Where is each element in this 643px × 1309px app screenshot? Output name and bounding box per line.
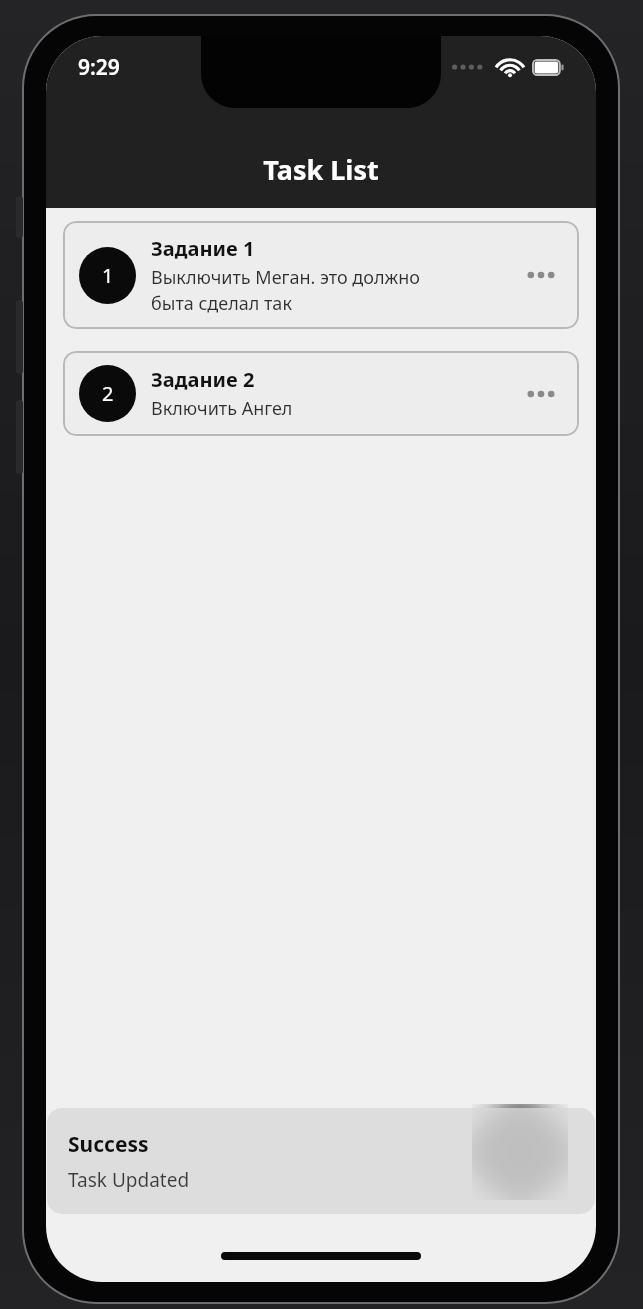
staticText: 1 (102, 262, 114, 289)
staticText: Задание 2 (151, 366, 255, 393)
button[interactable]: Add task (472, 1104, 568, 1200)
staticText: Task Updated (68, 1167, 190, 1193)
staticText: Задание 1 (151, 235, 255, 262)
button[interactable]: 2 (63, 351, 579, 436)
staticText: Выключить Меган. это должно быта сделал … (151, 265, 420, 315)
staticText: 9:29 (78, 53, 120, 82)
staticText: Task List (263, 151, 379, 188)
staticText: Включить Ангел (151, 396, 293, 421)
button[interactable]: Success (47, 1108, 595, 1214)
staticText: Success (68, 1130, 149, 1159)
button[interactable]: More options (519, 253, 563, 297)
button[interactable]: More options (519, 372, 563, 416)
button[interactable]: 1 (63, 221, 579, 329)
staticText: 2 (102, 380, 114, 407)
